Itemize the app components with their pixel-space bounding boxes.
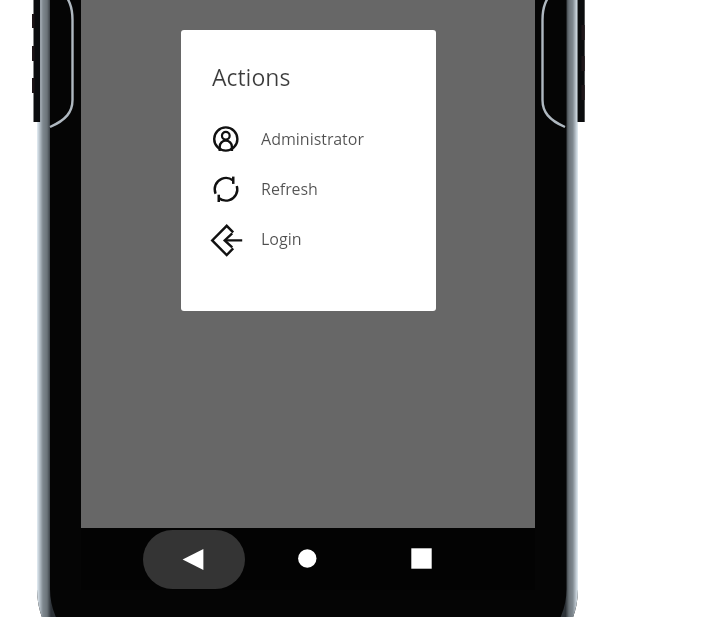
button[interactable]: Login — [205, 221, 410, 257]
button[interactable]: Administrator — [205, 121, 410, 157]
button[interactable]: Recent apps — [405, 542, 438, 575]
button[interactable]: Dismiss dialog — [81, 0, 535, 528]
button[interactable]: Refresh — [205, 171, 410, 207]
staticText: Refresh — [261, 178, 318, 200]
button[interactable]: Back — [143, 530, 245, 589]
staticText: Actions — [212, 61, 291, 92]
button[interactable]: Home — [291, 542, 324, 575]
staticText: Login — [261, 228, 302, 250]
staticText: Administrator — [261, 128, 364, 150]
